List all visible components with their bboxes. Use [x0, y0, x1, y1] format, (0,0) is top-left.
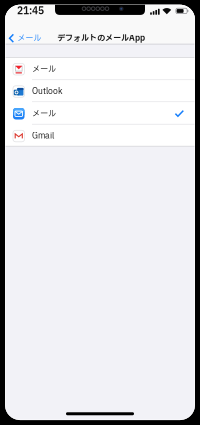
button[interactable]: メール [5, 58, 195, 80]
staticText: メール [32, 108, 56, 120]
staticText: Gmail [32, 130, 54, 142]
staticText: メール [32, 63, 56, 75]
staticText: Outlook [32, 85, 62, 98]
staticText: メール [17, 32, 41, 44]
button[interactable]: 戻る メール [9, 32, 41, 44]
button[interactable]: Outlook [5, 80, 195, 103]
staticText: デフォルトのメールApp [57, 32, 145, 44]
staticText: 21:45 [17, 4, 44, 19]
button[interactable]: Gmail [5, 125, 195, 147]
button[interactable]: メール [5, 103, 195, 125]
